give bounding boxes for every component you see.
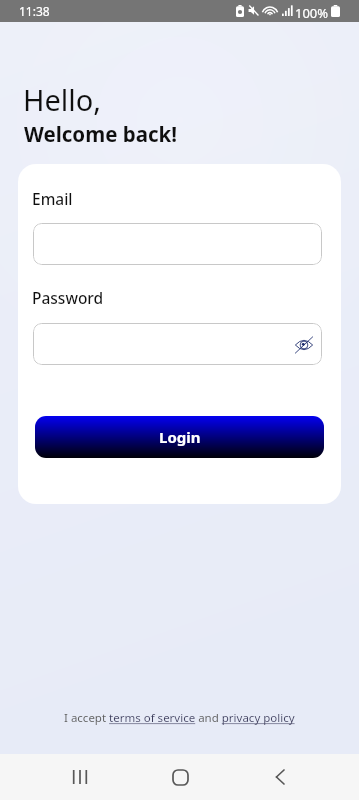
button[interactable]: Back bbox=[259, 757, 299, 797]
button[interactable]: Recents bbox=[60, 757, 100, 797]
staticText: Welcome back! bbox=[24, 120, 178, 148]
button[interactable]: Home bbox=[160, 757, 200, 797]
button[interactable]: Login bbox=[35, 416, 324, 458]
button[interactable]: Email field bbox=[33, 223, 322, 265]
staticText: Password bbox=[32, 287, 104, 308]
staticText: 100% bbox=[295, 4, 329, 22]
staticText: Email bbox=[32, 188, 73, 209]
button[interactable]: I accept terms of service and privacy po… bbox=[64, 710, 295, 726]
staticText: 11:38 bbox=[19, 3, 50, 19]
button[interactable]: Show password bbox=[293, 334, 315, 356]
staticText: Login bbox=[159, 427, 201, 447]
staticText: Hello, bbox=[23, 80, 102, 119]
staticText: I accept terms of service and privacy po… bbox=[64, 710, 295, 726]
button[interactable]: Password field bbox=[33, 323, 322, 365]
